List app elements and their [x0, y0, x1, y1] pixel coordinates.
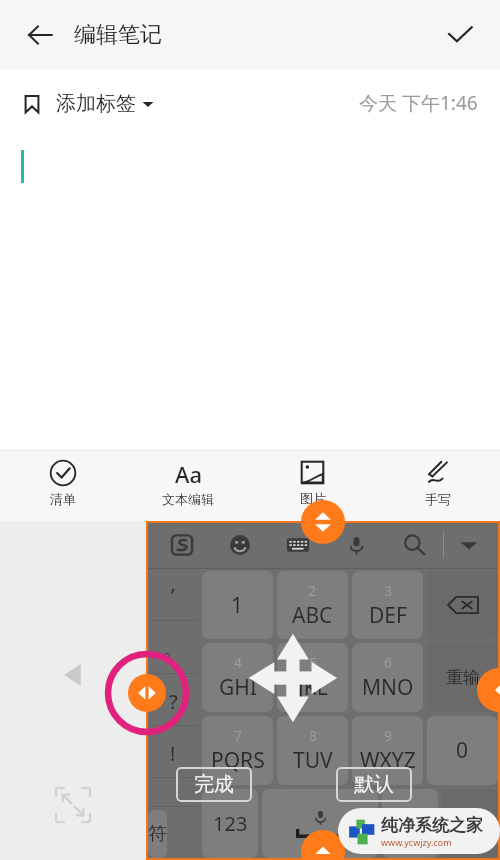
button[interactable]: Space / voice [262, 789, 378, 858]
button[interactable]: Move left [62, 664, 84, 686]
staticText: 4 [234, 653, 243, 672]
staticText: 编辑笔记 [74, 21, 162, 49]
staticText: ? [169, 688, 178, 715]
button[interactable]: Search [385, 521, 443, 569]
button[interactable]: ? [147, 676, 199, 726]
button[interactable]: Collapse keyboard [444, 521, 494, 569]
staticText: Aa [175, 459, 202, 487]
button[interactable]: Move keyboard down [301, 830, 345, 860]
staticText: GHI [219, 673, 257, 702]
button[interactable] [0, 136, 500, 450]
button[interactable]: Resize keyboard [56, 788, 90, 822]
staticText: 9 [384, 726, 393, 745]
button[interactable]: 3 [352, 571, 423, 639]
button[interactable]: 7 [202, 716, 273, 785]
button[interactable]: 6 [352, 643, 423, 712]
button[interactable]: 重输 [427, 643, 498, 712]
staticText: ABC [292, 601, 333, 630]
staticText: WXYZ [360, 746, 416, 775]
button[interactable]: Voice input [327, 521, 385, 569]
button[interactable]: 清单 [0, 451, 125, 521]
button[interactable]: Emoji [211, 521, 269, 569]
staticText: 。 [163, 636, 183, 661]
staticText: 符 [148, 822, 167, 846]
button[interactable] [147, 780, 199, 807]
button[interactable]: Enter [442, 789, 498, 858]
button[interactable]: 。 [147, 623, 199, 674]
staticText: 今天 下午1:46 [359, 90, 478, 116]
staticText: 纯净系统之家 [381, 815, 483, 836]
staticText: 完成 [194, 772, 234, 797]
button[interactable]: 5 [277, 643, 348, 712]
button[interactable]: Delete [427, 571, 498, 639]
button[interactable]: 2 [277, 571, 348, 639]
button[interactable]: 1 [202, 571, 273, 639]
button[interactable]: 符 [148, 810, 167, 858]
button[interactable]: 默认 [354, 772, 394, 797]
staticText: 0 [456, 736, 469, 765]
button[interactable]: 手写 [375, 451, 500, 521]
button[interactable]: 8 [277, 716, 348, 785]
button[interactable]: 0 [427, 716, 498, 785]
staticText: 清单 [50, 491, 76, 507]
button[interactable]: Keyboard layout [269, 521, 327, 569]
staticText: 手写 [425, 491, 451, 507]
staticText: MNO [362, 673, 414, 702]
staticText: 7 [234, 726, 243, 745]
staticText: 5 [309, 653, 318, 672]
button[interactable]: Move keyboard right [477, 668, 500, 712]
staticText: 1 [231, 591, 244, 620]
button[interactable]: Move keyboard vertically [301, 500, 345, 544]
staticText: 重输 [446, 667, 480, 688]
staticText: 123 [213, 810, 248, 837]
staticText: 添加标签 [56, 91, 136, 116]
staticText: ’ [171, 582, 175, 609]
staticText: 中 [400, 811, 420, 836]
staticText: ! [170, 740, 176, 767]
staticText: 2 [308, 581, 317, 600]
staticText: DEF [369, 601, 407, 630]
staticText: 图片 [300, 490, 326, 506]
staticText: TUV [293, 746, 333, 775]
button[interactable]: Sogou [152, 521, 211, 569]
button[interactable]: 完成 [194, 772, 234, 797]
button[interactable]: 图片 [250, 451, 375, 521]
button[interactable]: Save [436, 11, 484, 59]
button[interactable]: 4 [202, 643, 273, 712]
button[interactable]: ! [147, 728, 199, 778]
button[interactable]: 123 [202, 789, 258, 858]
staticText: 文本编辑 [162, 491, 214, 507]
button[interactable]: Move keyboard horizontally [128, 674, 166, 712]
staticText: JKL [298, 673, 328, 702]
button[interactable]: 中 [382, 789, 438, 858]
button[interactable]: 9 [352, 716, 423, 785]
staticText: 默认 [354, 772, 394, 797]
staticText: 8 [309, 726, 318, 745]
staticText: 3 [384, 581, 393, 600]
button[interactable]: Aa [125, 451, 250, 521]
button[interactable]: ’ [147, 570, 199, 621]
staticText: PQRS [211, 746, 265, 775]
button[interactable]: Back [18, 13, 62, 57]
staticText: www.ycwjzy.com [381, 836, 452, 848]
staticText: 6 [384, 653, 393, 672]
button[interactable]: 添加标签 [22, 91, 154, 116]
